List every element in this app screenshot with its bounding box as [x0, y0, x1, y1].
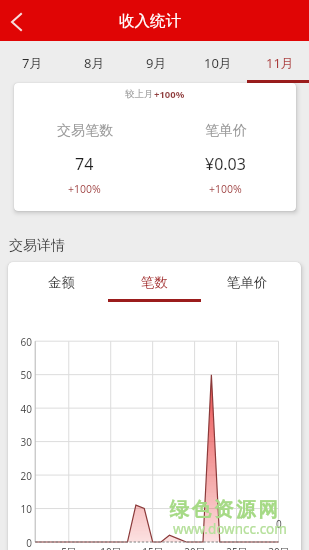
staticText: 收入统计: [119, 11, 181, 31]
button[interactable]: 9月: [123, 41, 185, 83]
staticText: 笔单价: [227, 274, 268, 291]
staticText: www.downcc.com: [173, 520, 287, 538]
staticText: 绿色资源网: [168, 497, 279, 522]
staticText: 金额: [48, 274, 75, 291]
button[interactable]: Back: [0, 0, 34, 41]
staticText: 10日: [98, 545, 124, 550]
staticText: 7月: [22, 54, 43, 72]
staticText: 8月: [84, 54, 105, 72]
staticText: 11月: [266, 54, 294, 72]
staticText: ¥0.03: [205, 153, 246, 175]
staticText: 20: [9, 469, 32, 483]
staticText: 笔数: [141, 274, 168, 291]
button[interactable]: 10月: [185, 41, 247, 83]
staticText: 0: [9, 536, 32, 550]
staticText: 笔单价: [205, 122, 247, 140]
staticText: 30日: [266, 545, 292, 550]
button[interactable]: 7月: [0, 41, 61, 83]
staticText: 5日: [56, 545, 82, 550]
staticText: 50: [9, 368, 32, 382]
staticText: 74: [75, 153, 94, 175]
staticText: +100%: [209, 182, 242, 196]
staticText: 10: [9, 502, 32, 516]
staticText: 25日: [224, 545, 250, 550]
button[interactable]: 笔单价: [201, 262, 294, 302]
staticText: +100%: [68, 182, 101, 196]
button[interactable]: 11月: [247, 41, 309, 83]
staticText: 15日: [140, 545, 166, 550]
staticText: 0: [276, 517, 282, 531]
staticText: 交易笔数: [57, 122, 113, 140]
button[interactable]: 8月: [61, 41, 123, 83]
button[interactable]: 笔数: [108, 262, 201, 302]
staticText: +100%: [154, 88, 185, 101]
staticText: 交易详情: [9, 237, 65, 255]
staticText: 40: [9, 402, 32, 416]
staticText: 9月: [146, 54, 167, 72]
staticText: 30: [9, 435, 32, 449]
staticText: 20日: [182, 545, 208, 550]
staticText: 较上月: [125, 88, 154, 100]
button[interactable]: 金额: [15, 262, 108, 302]
staticText: 60: [9, 335, 32, 349]
staticText: 10月: [204, 54, 232, 72]
